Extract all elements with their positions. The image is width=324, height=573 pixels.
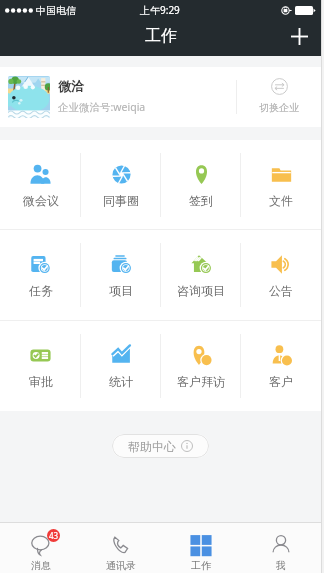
button[interactable]: 文件 — [241, 140, 321, 230]
staticText: 工作 — [145, 26, 177, 46]
button[interactable]: 公告 — [241, 230, 321, 321]
staticText: 咨询项目 — [177, 283, 225, 298]
button[interactable]: 微会议 — [0, 140, 81, 230]
staticText: 客户拜访 — [177, 374, 225, 389]
button[interactable]: 客户 — [241, 321, 321, 411]
button[interactable]: 切换企业 — [237, 67, 321, 127]
staticText: 工作 — [191, 559, 211, 572]
button[interactable]: 同事圈 — [81, 140, 161, 230]
button[interactable]: 工作 — [161, 523, 241, 573]
button[interactable]: 我 — [241, 523, 321, 573]
staticText: 微洽 — [58, 78, 84, 94]
staticText: 通讯录 — [106, 559, 136, 572]
button[interactable]: 统计 — [81, 321, 161, 411]
button[interactable]: 审批 — [0, 321, 81, 411]
button[interactable]: 43 — [0, 523, 81, 573]
staticText: 统计 — [109, 374, 133, 389]
staticText: 企业微洽号:weiqia — [58, 100, 146, 114]
staticText: 切换企业 — [259, 101, 299, 114]
staticText: 任务 — [29, 283, 53, 298]
staticText: 项目 — [109, 283, 133, 298]
staticText: 帮助中心 — [128, 439, 176, 454]
button[interactable] — [8, 76, 50, 118]
button[interactable]: 签到 — [161, 140, 241, 230]
button[interactable]: Add — [278, 20, 321, 56]
staticText: 上午9:29 — [140, 3, 180, 17]
staticText: 同事圈 — [103, 193, 139, 208]
staticText: 审批 — [29, 374, 53, 389]
staticText: 消息 — [31, 559, 51, 572]
staticText: 中国电信 — [36, 4, 76, 17]
button[interactable]: 项目 — [81, 230, 161, 321]
staticText: 43 — [49, 530, 59, 541]
staticText: 我 — [276, 559, 286, 572]
staticText: 微会议 — [23, 193, 59, 208]
button[interactable]: 通讯录 — [81, 523, 161, 573]
button[interactable]: 任务 — [0, 230, 81, 321]
button[interactable]: 帮助中心 — [112, 434, 209, 458]
staticText: 签到 — [189, 193, 213, 208]
button[interactable]: 客户拜访 — [161, 321, 241, 411]
staticText: 文件 — [269, 193, 293, 208]
staticText: 公告 — [269, 283, 293, 298]
staticText: 客户 — [269, 374, 293, 389]
button[interactable]: 咨询项目 — [161, 230, 241, 321]
